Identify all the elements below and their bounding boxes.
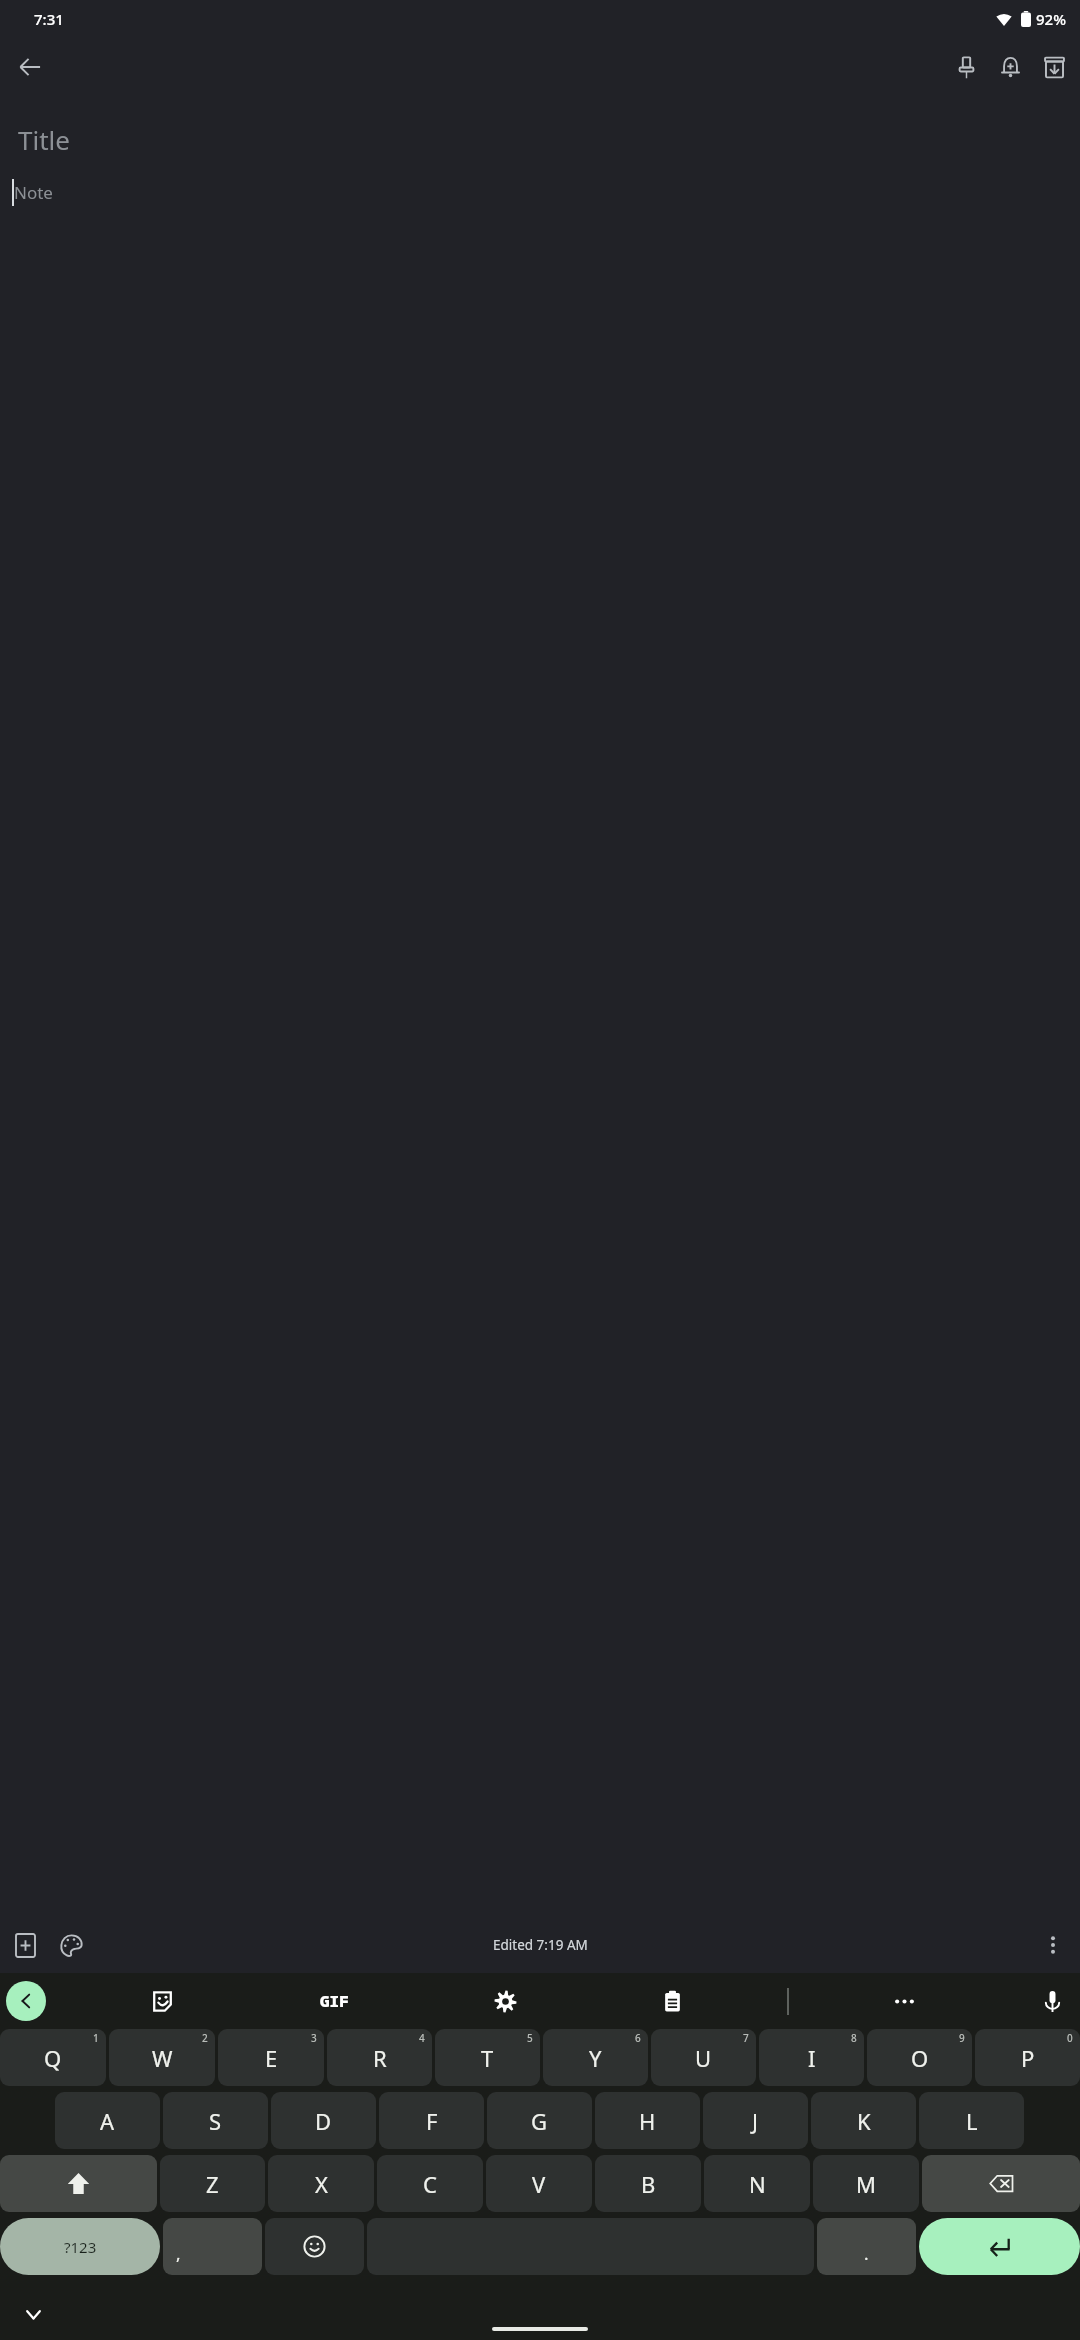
staticText: . bbox=[864, 2242, 869, 2265]
button[interactable]: U bbox=[651, 2029, 756, 2086]
button[interactable]: Add bbox=[2, 1922, 48, 1968]
button[interactable]: Enter bbox=[919, 2218, 1080, 2275]
button[interactable]: Z bbox=[160, 2155, 265, 2212]
staticText: A bbox=[100, 2106, 115, 2136]
staticText: 7 bbox=[743, 2031, 749, 2045]
staticText: R bbox=[373, 2043, 387, 2073]
button[interactable]: Settings bbox=[485, 1981, 525, 2021]
button[interactable]: L bbox=[919, 2092, 1024, 2149]
staticText: H bbox=[639, 2106, 656, 2136]
button[interactable]: Q bbox=[0, 2029, 106, 2086]
staticText: W bbox=[152, 2043, 173, 2073]
staticText: J bbox=[752, 2106, 759, 2136]
button[interactable]: Voice input bbox=[1032, 1981, 1072, 2021]
staticText: L bbox=[966, 2106, 978, 2136]
staticText: 4 bbox=[419, 2031, 425, 2045]
button[interactable]: D bbox=[271, 2092, 376, 2149]
button[interactable]: T bbox=[435, 2029, 540, 2086]
staticText: T bbox=[481, 2043, 494, 2073]
button[interactable]: P bbox=[975, 2029, 1080, 2086]
staticText: 2 bbox=[202, 2031, 208, 2045]
button[interactable]: More options bbox=[884, 1981, 924, 2021]
staticText: E bbox=[265, 2043, 278, 2073]
staticText: 3 bbox=[311, 2031, 317, 2045]
button[interactable]: Comma bbox=[163, 2218, 262, 2275]
button[interactable]: M bbox=[813, 2155, 919, 2212]
button[interactable]: Emoji bbox=[265, 2218, 364, 2275]
button[interactable]: E bbox=[218, 2029, 324, 2086]
button[interactable]: J bbox=[703, 2092, 808, 2149]
staticText: 8 bbox=[851, 2031, 857, 2045]
staticText: 5 bbox=[527, 2031, 533, 2045]
staticText: P bbox=[1021, 2043, 1035, 2073]
staticText: Note bbox=[14, 181, 53, 204]
button[interactable]: Archive bbox=[1032, 45, 1076, 89]
staticText: Q bbox=[44, 2043, 62, 2073]
staticText: 92% bbox=[1036, 9, 1066, 29]
button[interactable]: Backspace bbox=[922, 2155, 1080, 2212]
staticText: Y bbox=[589, 2043, 602, 2073]
staticText: , bbox=[176, 2242, 181, 2265]
staticText: Title bbox=[18, 122, 70, 157]
button[interactable]: Hide keyboard bbox=[11, 2292, 55, 2336]
button[interactable]: Shift bbox=[0, 2155, 157, 2212]
staticText: U bbox=[695, 2043, 712, 2073]
staticText: 1 bbox=[93, 2031, 99, 2045]
button[interactable]: Add reminder bbox=[988, 45, 1032, 89]
button[interactable]: S bbox=[163, 2092, 268, 2149]
button[interactable]: V bbox=[486, 2155, 592, 2212]
staticText: X bbox=[315, 2169, 328, 2199]
button[interactable]: G bbox=[487, 2092, 592, 2149]
button[interactable]: X bbox=[268, 2155, 374, 2212]
button[interactable]: O bbox=[867, 2029, 972, 2086]
staticText: GIF bbox=[320, 1990, 349, 2012]
button[interactable]: Stickers bbox=[142, 1981, 182, 2021]
button[interactable]: More options bbox=[1030, 1922, 1076, 1968]
staticText: B bbox=[641, 2169, 656, 2199]
button[interactable]: ?123 bbox=[0, 2218, 160, 2275]
staticText: N bbox=[749, 2169, 766, 2199]
staticText: D bbox=[315, 2106, 332, 2136]
staticText: S bbox=[209, 2106, 222, 2136]
staticText: Edited 7:19 AM bbox=[493, 1936, 588, 1954]
button[interactable]: Back bbox=[6, 43, 54, 91]
button[interactable]: R bbox=[327, 2029, 432, 2086]
staticText: V bbox=[532, 2169, 546, 2199]
button[interactable]: Period bbox=[817, 2218, 916, 2275]
staticText: O bbox=[911, 2043, 929, 2073]
button[interactable]: GIF bbox=[310, 1981, 358, 2021]
staticText: K bbox=[857, 2106, 871, 2136]
button[interactable]: H bbox=[595, 2092, 700, 2149]
staticText: Z bbox=[206, 2169, 219, 2199]
staticText: M bbox=[856, 2169, 876, 2199]
button[interactable]: N bbox=[704, 2155, 810, 2212]
staticText: G bbox=[531, 2106, 548, 2136]
staticText: 6 bbox=[635, 2031, 641, 2045]
button[interactable]: I bbox=[759, 2029, 864, 2086]
button[interactable]: A bbox=[55, 2092, 160, 2149]
button[interactable]: Y bbox=[543, 2029, 648, 2086]
staticText: I bbox=[808, 2043, 816, 2073]
staticText: 0 bbox=[1067, 2031, 1073, 2045]
button[interactable]: F bbox=[379, 2092, 484, 2149]
staticText: 9 bbox=[959, 2031, 965, 2045]
staticText: ?123 bbox=[64, 2237, 97, 2257]
button[interactable]: Clipboard bbox=[652, 1981, 692, 2021]
button[interactable]: Pin bbox=[944, 45, 988, 89]
staticText: 7:31 bbox=[34, 9, 64, 29]
staticText: C bbox=[423, 2169, 437, 2199]
button[interactable]: W bbox=[109, 2029, 215, 2086]
button[interactable]: Background options bbox=[48, 1922, 94, 1968]
button[interactable]: B bbox=[595, 2155, 701, 2212]
button[interactable]: Expand toolbar bbox=[6, 1981, 46, 2021]
staticText: F bbox=[426, 2106, 438, 2136]
button[interactable]: C bbox=[377, 2155, 483, 2212]
button[interactable]: K bbox=[811, 2092, 916, 2149]
